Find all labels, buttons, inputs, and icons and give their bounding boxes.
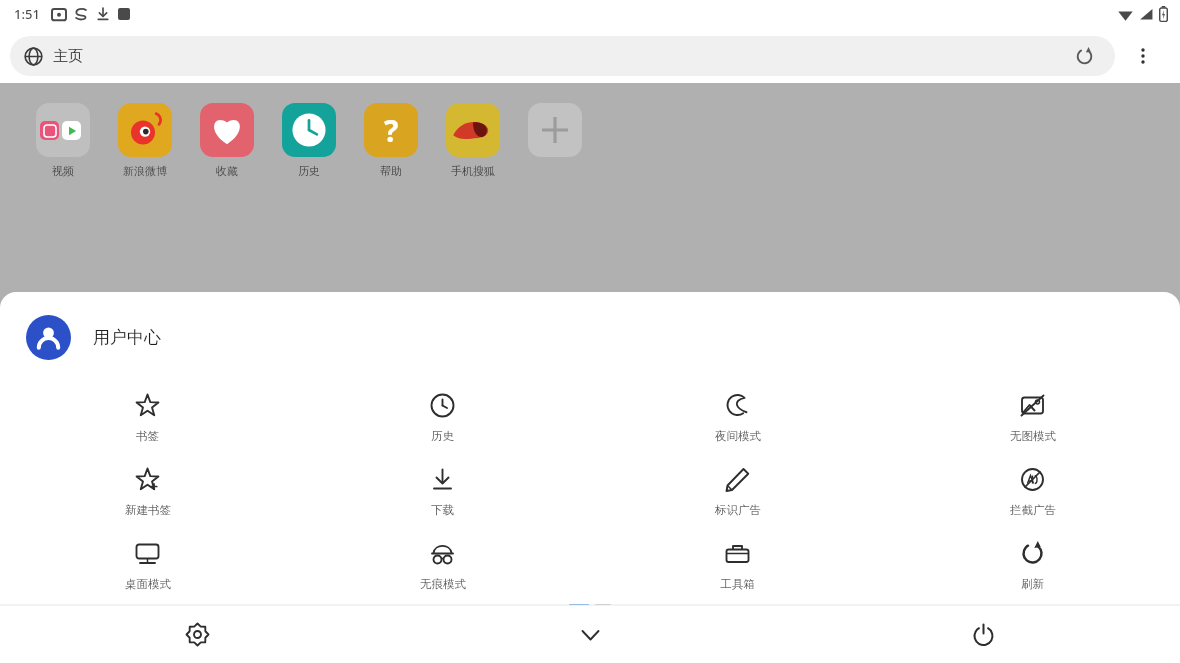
button[interactable]: 标识广告 xyxy=(590,456,885,530)
button[interactable]: 手机搜狐 xyxy=(432,103,514,178)
staticText: 手机搜狐 xyxy=(451,164,495,178)
staticText: 书签 xyxy=(136,429,159,443)
button[interactable]: 主页 xyxy=(10,36,1115,76)
button[interactable]: 视频 xyxy=(22,103,104,178)
staticText: 历史 xyxy=(431,429,454,443)
staticText: 无痕模式 xyxy=(420,577,466,591)
button[interactable]: More options xyxy=(1115,28,1170,83)
button[interactable]: 无痕模式 xyxy=(295,530,590,604)
staticText: 帮助 xyxy=(380,164,402,178)
button[interactable]: 收藏 xyxy=(186,103,268,178)
button[interactable]: 历史 xyxy=(295,382,590,456)
button[interactable]: 刷新 xyxy=(885,530,1180,604)
button[interactable]: 书签 xyxy=(0,382,295,456)
staticText: 收藏 xyxy=(216,164,238,178)
staticText: 新建书签 xyxy=(125,503,171,517)
staticText: 1:51 xyxy=(14,5,40,23)
staticText: 标识广告 xyxy=(715,503,761,517)
staticText: 主页 xyxy=(53,47,83,66)
button[interactable]: 新建书签 xyxy=(0,456,295,530)
staticText: ? xyxy=(384,110,399,151)
button[interactable]: 桌面模式 xyxy=(0,530,295,604)
button[interactable]: Collapse xyxy=(394,605,787,663)
button[interactable] xyxy=(514,103,596,164)
button[interactable]: 用户中心 xyxy=(0,292,1180,382)
staticText: 视频 xyxy=(52,164,74,178)
button[interactable]: 工具箱 xyxy=(590,530,885,604)
button[interactable]: Reload xyxy=(1067,39,1101,73)
button[interactable]: 下载 xyxy=(295,456,590,530)
staticText: 夜间模式 xyxy=(715,429,761,443)
button[interactable]: 夜间模式 xyxy=(590,382,885,456)
staticText: 工具箱 xyxy=(720,577,755,591)
staticText: 桌面模式 xyxy=(125,577,171,591)
staticText: 无图模式 xyxy=(1010,429,1056,443)
button[interactable]: Exit xyxy=(787,605,1180,663)
staticText: 刷新 xyxy=(1021,577,1044,591)
staticText: 新浪微博 xyxy=(123,164,167,178)
button[interactable]: 拦截广告 xyxy=(885,456,1180,530)
staticText: 下载 xyxy=(431,503,454,517)
button[interactable]: 无图模式 xyxy=(885,382,1180,456)
staticText: 拦截广告 xyxy=(1010,503,1056,517)
button[interactable]: Settings xyxy=(0,605,394,663)
button[interactable]: ? xyxy=(350,103,432,178)
button[interactable]: 新浪微博 xyxy=(104,103,186,178)
staticText: 用户中心 xyxy=(93,327,161,348)
staticText: 历史 xyxy=(298,164,320,178)
button[interactable]: 历史 xyxy=(268,103,350,178)
